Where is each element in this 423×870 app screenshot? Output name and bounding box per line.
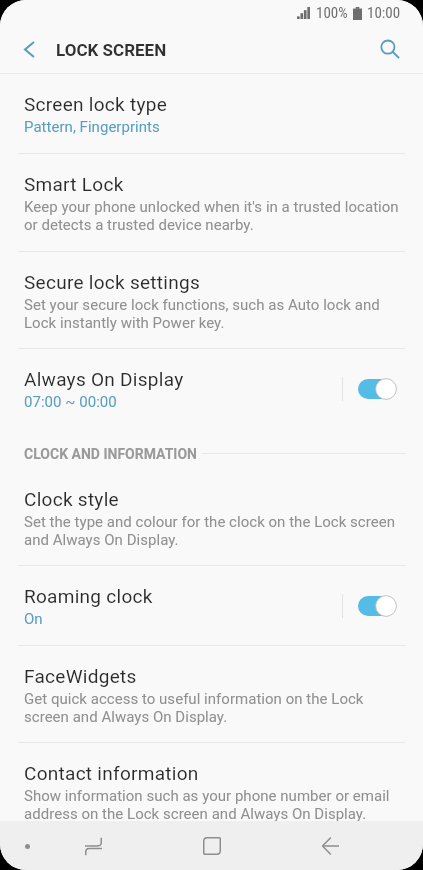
staticText: Keep your phone unlocked when it's in a … [24,198,406,234]
staticText: 07:00 ~ 00:00 [24,393,117,411]
button[interactable]: Navigate up [0,30,52,73]
staticText: Always On Display [24,368,184,390]
staticText: Screen lock type [24,93,168,115]
staticText: CLOCK AND INFORMATION [24,446,197,462]
button[interactable]: Roaming clock [0,566,423,645]
staticText: Set the type and colour for the clock on… [24,513,406,549]
staticText: On [24,610,43,628]
staticText: Pattern, Fingerprints [24,118,160,136]
button[interactable]: Smart Lock [0,154,423,251]
staticText: FaceWidgets [24,665,137,687]
staticText: Secure lock settings [24,271,201,293]
button[interactable]: Toggle switch [358,377,397,401]
staticText: LOCK SCREEN [56,40,167,60]
button[interactable]: Always On Display [0,349,423,429]
staticText: Get quick access to useful information o… [24,690,406,726]
staticText: Show information such as your phone numb… [24,787,406,821]
staticText: Set your secure lock functions, such as … [24,296,406,332]
button[interactable]: Back [294,821,366,870]
button[interactable]: Screen lock type [0,74,423,153]
button[interactable]: Contact information [0,743,423,821]
staticText: Contact information [24,762,199,784]
button[interactable]: FaceWidgets [0,646,423,742]
staticText: 100% [316,4,348,22]
staticText: 10:00 [367,4,401,22]
staticText: Roaming clock [24,585,153,607]
staticText: Smart Lock [24,173,124,195]
button[interactable]: Recent apps [58,821,130,870]
button[interactable]: Toggle switch [358,594,397,618]
button[interactable]: Clock style [0,469,423,565]
button[interactable]: Secure lock settings [0,252,423,348]
button[interactable]: Search [376,30,423,73]
button[interactable]: Home [176,821,248,870]
staticText: Clock style [24,488,119,510]
